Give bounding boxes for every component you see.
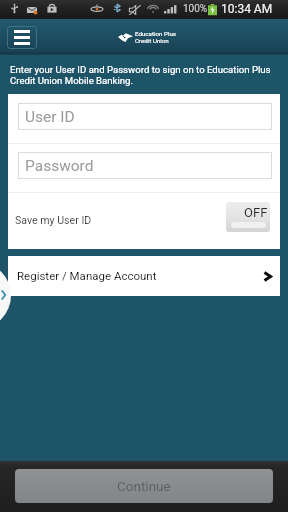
button[interactable]: Save my User ID toggle, off bbox=[226, 202, 270, 232]
staticText: Education Plus bbox=[135, 30, 176, 37]
staticText: Continue bbox=[117, 478, 171, 494]
staticText: User ID bbox=[25, 108, 75, 126]
button[interactable]: Continue bbox=[15, 469, 273, 503]
staticText: Credit Union bbox=[135, 37, 169, 44]
button[interactable]: Open navigation drawer bbox=[0, 262, 11, 329]
button[interactable]: Password bbox=[18, 152, 272, 179]
staticText: Save my User ID bbox=[15, 214, 92, 226]
staticText: 100% bbox=[183, 3, 208, 15]
staticText: OFF bbox=[244, 205, 268, 220]
button[interactable]: User ID bbox=[18, 103, 272, 130]
staticText: Password bbox=[25, 157, 94, 175]
staticText: Register / Manage Account bbox=[17, 269, 157, 282]
staticText: 10:34 AM bbox=[221, 2, 273, 16]
staticText: Enter your User ID and Password to sign … bbox=[10, 64, 271, 86]
button[interactable]: Register / Manage Account bbox=[8, 256, 280, 296]
button[interactable]: Menu bbox=[7, 26, 37, 49]
